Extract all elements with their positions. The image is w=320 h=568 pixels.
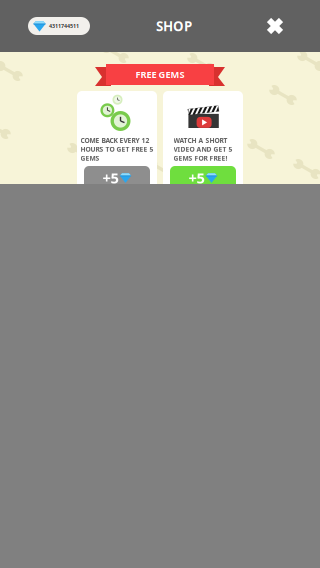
- button[interactable]: Close: [258, 9, 292, 43]
- staticText: +5: [188, 168, 204, 187]
- button[interactable]: +5: [170, 166, 236, 200]
- staticText: WATCH A SHORT VIDEO AND GET 5 GEMS FOR F…: [173, 136, 232, 163]
- button[interactable]: +5: [84, 166, 150, 200]
- staticText: +5: [102, 168, 118, 187]
- staticText: FREE GEMS: [135, 68, 184, 81]
- button[interactable]: 4311744511: [28, 17, 90, 35]
- staticText: SHOP: [156, 17, 192, 35]
- staticText: 4311744511: [49, 22, 79, 30]
- staticText: COME BACK EVERY 12 HOURS TO GET FREE 5 G…: [80, 136, 153, 163]
